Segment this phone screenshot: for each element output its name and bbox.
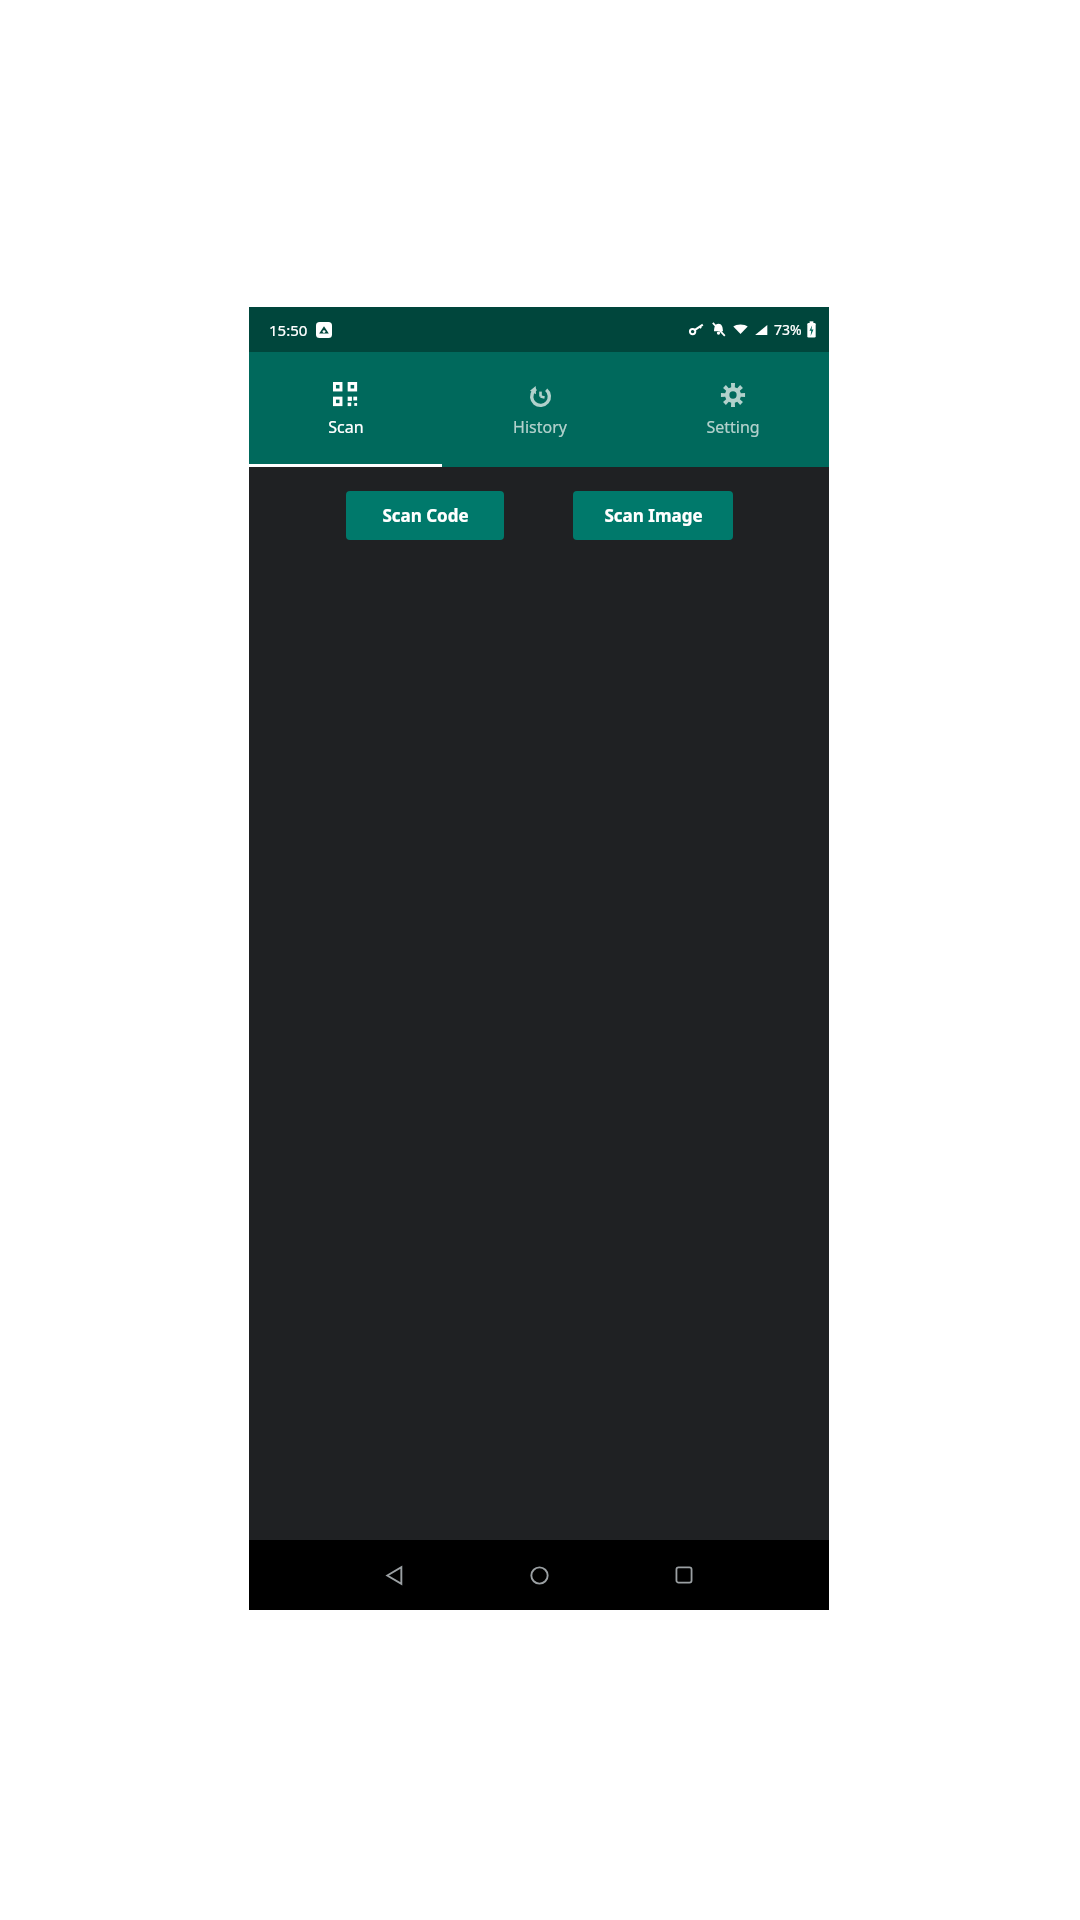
staticText: Scan Image [604, 504, 703, 527]
staticText: Scan Code [382, 504, 469, 527]
button[interactable]: Recent apps [660, 1551, 708, 1599]
button[interactable]: Scan Image [573, 491, 733, 540]
button[interactable]: Home [515, 1551, 563, 1599]
staticText: 15:50 [269, 320, 308, 340]
staticText: Setting [706, 416, 760, 438]
button[interactable]: History [443, 352, 636, 467]
staticText: 73% [774, 320, 802, 339]
button[interactable]: Scan Code [346, 491, 504, 540]
button[interactable]: Scan [249, 352, 443, 467]
button[interactable]: Setting [636, 352, 829, 467]
button[interactable]: Back [370, 1551, 418, 1599]
staticText: History [513, 416, 567, 438]
staticText: Scan [328, 416, 364, 438]
